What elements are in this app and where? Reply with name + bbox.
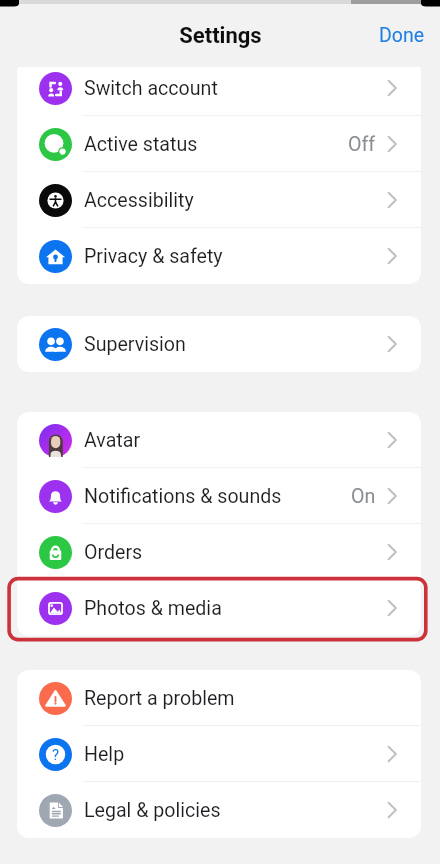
staticText: Settings bbox=[179, 23, 262, 49]
staticText: Done bbox=[379, 24, 425, 47]
button[interactable]: Active status bbox=[17, 116, 421, 172]
button[interactable]: Avatar bbox=[17, 412, 421, 468]
staticText: Switch account bbox=[84, 77, 218, 100]
staticText: Privacy & safety bbox=[84, 245, 223, 268]
button[interactable]: Privacy & safety bbox=[17, 228, 421, 284]
button[interactable]: ? bbox=[17, 726, 421, 782]
button[interactable]: Legal & policies bbox=[17, 782, 421, 838]
staticText: Help bbox=[84, 743, 125, 766]
staticText: Supervision bbox=[84, 333, 186, 356]
button[interactable]: Accessibility bbox=[17, 172, 421, 228]
staticText: Off bbox=[348, 133, 376, 156]
button[interactable]: Orders bbox=[17, 524, 421, 580]
staticText: Notifications & sounds bbox=[84, 485, 282, 508]
button[interactable]: Switch account bbox=[17, 60, 421, 116]
staticText: On bbox=[351, 485, 376, 508]
staticText: Report a problem bbox=[84, 687, 235, 710]
staticText: Photos & media bbox=[84, 597, 222, 620]
button[interactable]: Supervision bbox=[17, 316, 421, 372]
staticText: Orders bbox=[84, 541, 143, 564]
staticText: ? bbox=[52, 746, 60, 764]
staticText: Legal & policies bbox=[84, 799, 221, 822]
button[interactable]: Photos & media bbox=[17, 580, 421, 636]
staticText: Avatar bbox=[84, 429, 141, 452]
button[interactable]: Report a problem bbox=[17, 670, 421, 726]
button[interactable]: Done bbox=[361, 15, 440, 56]
button[interactable]: Notifications & sounds bbox=[17, 468, 421, 524]
staticText: Accessibility bbox=[84, 189, 194, 212]
staticText: Active status bbox=[84, 133, 198, 156]
